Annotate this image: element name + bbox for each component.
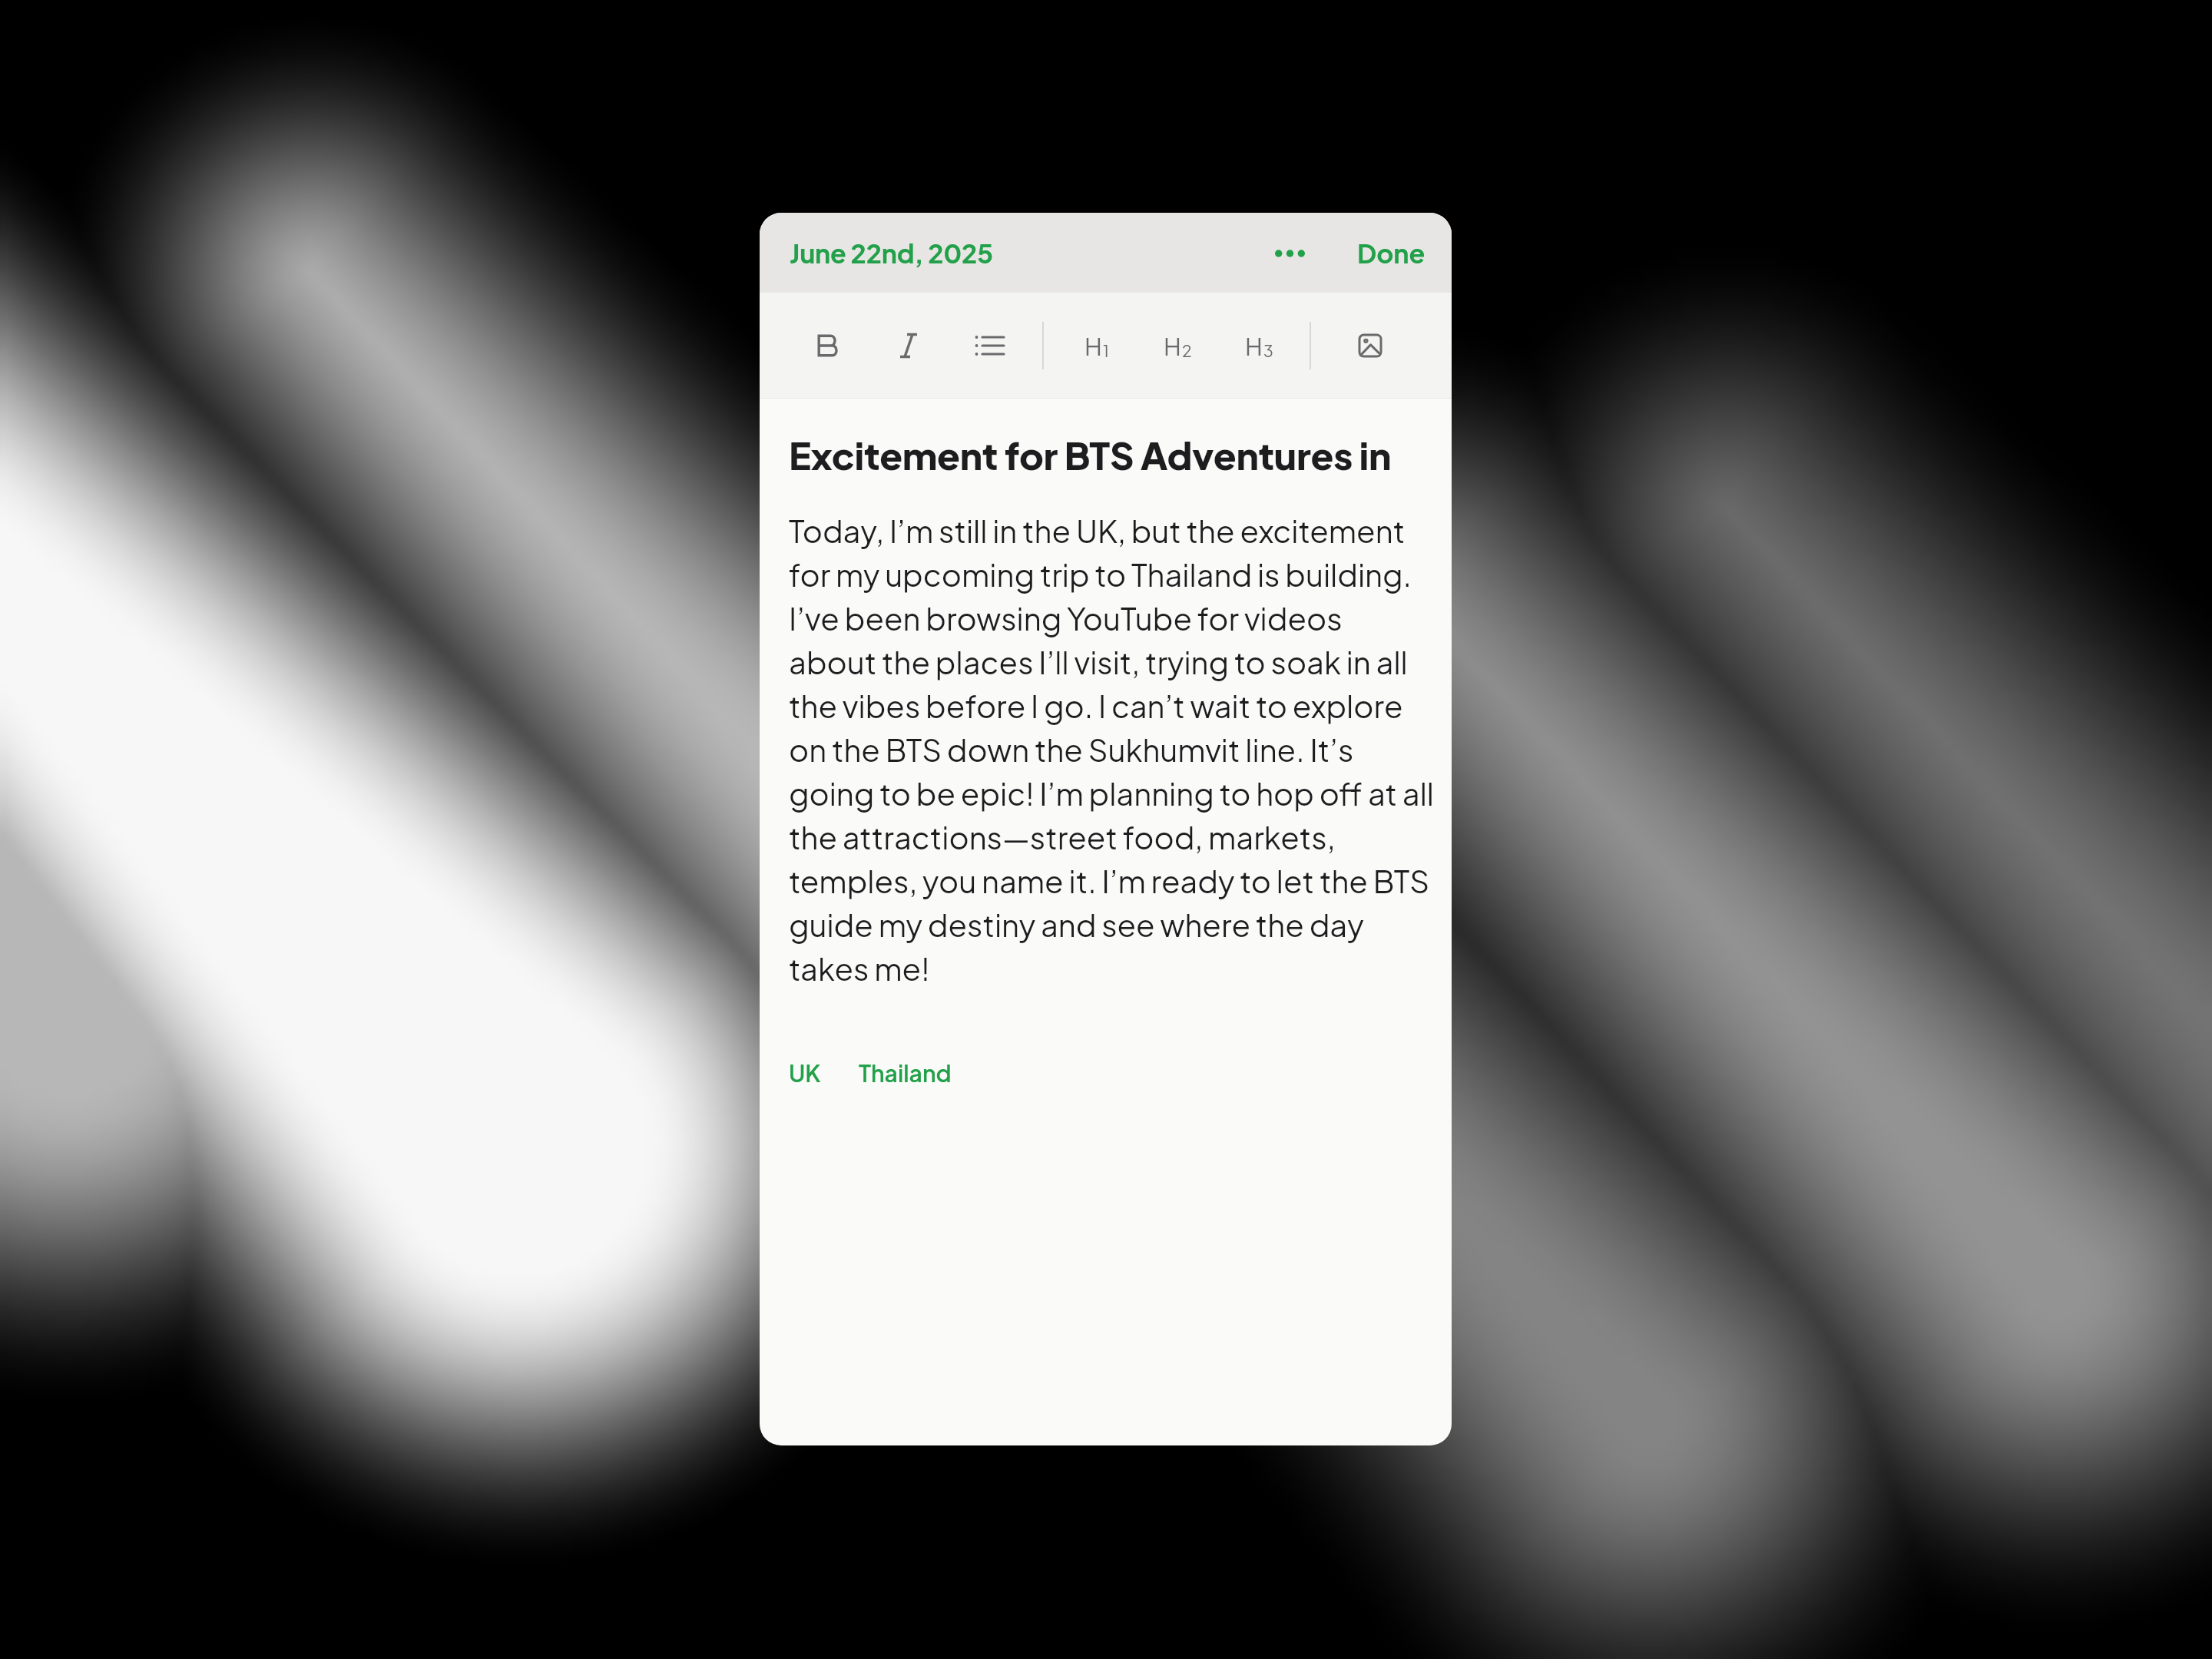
- button[interactable]: June 22nd, 2025: [782, 230, 1001, 276]
- staticText: H: [1164, 331, 1181, 361]
- staticText: Today, I’m still in the UK, but the exci…: [789, 511, 1435, 988]
- button[interactable]: Bulleted list: [949, 293, 1031, 399]
- staticText: H: [1245, 331, 1263, 361]
- button[interactable]: More options: [1264, 238, 1316, 269]
- button[interactable]: Thailand: [859, 1054, 952, 1092]
- staticText: UK: [789, 1058, 821, 1088]
- button[interactable]: UK: [789, 1054, 821, 1092]
- button[interactable]: Italic: [868, 293, 949, 399]
- staticText: June 22nd, 2025: [790, 237, 993, 270]
- button[interactable]: Bold: [786, 293, 868, 399]
- button[interactable]: Heading 2: [1137, 293, 1218, 399]
- staticText: 1: [1103, 340, 1109, 360]
- button[interactable]: Heading 1: [1055, 293, 1137, 399]
- staticText: Excitement for BTS Adventures in: [789, 431, 1392, 478]
- button[interactable]: Heading 3: [1218, 293, 1300, 399]
- staticText: 3: [1263, 340, 1273, 360]
- staticText: Thailand: [859, 1058, 952, 1088]
- staticText: H: [1084, 331, 1102, 361]
- button[interactable]: Done: [1353, 230, 1430, 276]
- button[interactable]: Insert image: [1330, 293, 1411, 399]
- staticText: 2: [1182, 340, 1192, 360]
- staticText: Done: [1357, 237, 1426, 270]
